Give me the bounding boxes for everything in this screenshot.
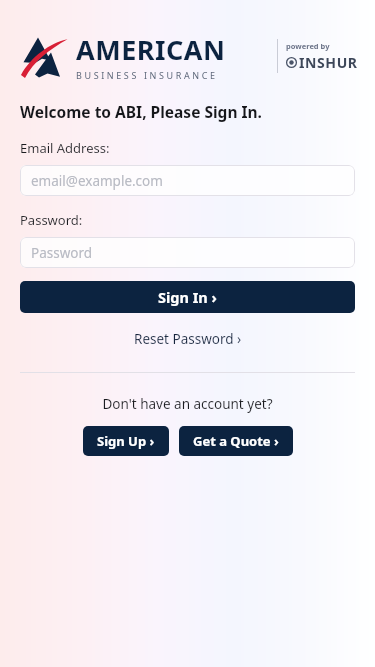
staticText: Get a Quote › <box>193 432 279 450</box>
staticText: Sign Up › <box>97 432 155 450</box>
staticText: AMERICAN <box>76 31 226 68</box>
staticText: Reset Password › <box>134 330 242 348</box>
button[interactable]: Password <box>20 237 355 268</box>
button[interactable]: Reset Password › <box>0 327 375 351</box>
staticText: Password <box>31 244 93 262</box>
staticText: Welcome to ABI, Please Sign In. <box>20 101 262 122</box>
staticText: Sign In › <box>158 287 217 307</box>
staticText: email@example.com <box>31 172 163 190</box>
button[interactable]: Sign In › <box>20 281 355 313</box>
staticText: Don't have an account yet? <box>0 395 375 413</box>
button[interactable]: Sign Up › <box>83 426 169 456</box>
button[interactable]: email@example.com <box>20 165 355 196</box>
button[interactable]: Get a Quote › <box>179 426 293 456</box>
staticText: Password: <box>20 211 83 229</box>
staticText: INSHUR <box>299 53 358 72</box>
staticText: Email Address: <box>20 139 110 157</box>
staticText: powered by <box>286 41 330 51</box>
staticText: BUSINESS INSURANCE <box>76 69 218 81</box>
